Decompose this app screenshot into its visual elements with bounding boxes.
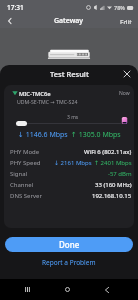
- staticText: PHY Mode: [10, 148, 40, 156]
- staticText: PHY Speed: [10, 159, 41, 167]
- staticText: UDM-SE-TMC → TMC-S24: [17, 98, 78, 105]
- staticText: DNS Server: [10, 192, 42, 200]
- staticText: Report a Problem: [42, 258, 96, 267]
- staticText: Gateway: [54, 16, 84, 26]
- staticText: 3 ms: [67, 114, 79, 121]
- button[interactable]: Done: [5, 237, 133, 252]
- staticText: 33 (160 MHz): [95, 181, 132, 189]
- button[interactable]: Back: [99, 282, 114, 297]
- staticText: ↑ 2401 Mbps: [94, 159, 132, 167]
- staticText: 192.168.10.15: [92, 192, 132, 200]
- staticText: ↓ 2161 Mbps: [54, 159, 92, 167]
- button[interactable]: Back: [1, 14, 18, 28]
- staticText: ↑ 1305.0 Mbps: [71, 130, 121, 140]
- staticText: Signal: [10, 170, 28, 178]
- staticText: Now: [119, 90, 130, 97]
- staticText: 78%: [114, 4, 125, 11]
- button[interactable]: Recent apps: [20, 282, 35, 297]
- staticText: Done: [59, 239, 80, 250]
- staticText: MIC-TMC6e: [19, 90, 51, 98]
- button[interactable]: Edit: [114, 14, 138, 28]
- staticText: ↓ 1146.6 Mbps: [18, 130, 68, 140]
- staticText: Test Result: [50, 69, 89, 79]
- staticText: Channel: [10, 181, 34, 189]
- staticText: Edit: [120, 18, 132, 24]
- button[interactable]: Report a Problem: [36, 256, 102, 269]
- button[interactable]: Home: [60, 282, 75, 297]
- button[interactable]: Close: [120, 67, 134, 81]
- staticText: -57 dBm: [108, 170, 132, 178]
- staticText: 17:31: [7, 3, 24, 12]
- staticText: WiFi 6 (802.11ax): [84, 148, 132, 156]
- button[interactable]: MIC-TMC6e: [4, 85, 134, 228]
